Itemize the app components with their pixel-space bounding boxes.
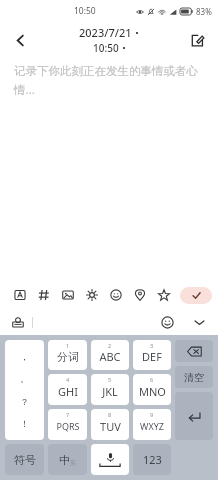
staticText: 2 <box>108 342 112 349</box>
button[interactable]: Emoji <box>156 311 178 333</box>
button[interactable]: Tag <box>32 283 56 307</box>
button[interactable]: 分词 <box>48 340 87 370</box>
button[interactable]: Weather <box>80 283 104 307</box>
staticText: 1 <box>66 342 70 349</box>
button[interactable]: WXYZ <box>133 409 171 440</box>
button[interactable]: Punctuation <box>5 340 44 440</box>
button[interactable]: Text style <box>8 283 32 307</box>
staticText: 123 <box>143 452 162 467</box>
button[interactable]: ABC <box>91 340 129 370</box>
button[interactable]: Done <box>180 287 212 304</box>
staticText: ！ <box>20 418 29 429</box>
staticText: DEF <box>142 349 162 364</box>
staticText: 中 <box>59 453 70 467</box>
staticText: 10:50 <box>93 41 119 55</box>
staticText: 4 <box>66 376 70 383</box>
staticText: 。 <box>20 373 29 384</box>
staticText: 83% <box>196 6 212 17</box>
staticText: 符号 <box>14 453 36 467</box>
staticText: 9 <box>150 411 154 418</box>
button[interactable]: GHI <box>48 374 87 405</box>
button[interactable]: Handwriting <box>8 312 28 332</box>
staticText: 6 <box>150 376 154 383</box>
staticText: 8 <box>108 411 112 418</box>
button[interactable]: Favorite <box>152 283 176 307</box>
staticText: 10:50 <box>74 5 96 17</box>
button[interactable]: TUV <box>91 409 129 440</box>
staticText: 2023/7/21 <box>79 25 132 40</box>
button[interactable]: MNO <box>133 374 171 405</box>
button[interactable]: Space / voice <box>91 444 129 475</box>
button[interactable]: Edit <box>184 27 210 53</box>
button[interactable]: DEF <box>133 340 171 370</box>
button[interactable]: 2023/7/21 <box>79 25 139 55</box>
staticText: 7 <box>66 411 70 418</box>
button[interactable]: PQRS <box>48 409 87 440</box>
staticText: 3 <box>150 342 154 349</box>
button[interactable]: Hide keyboard <box>188 311 210 333</box>
button[interactable]: Location <box>128 283 152 307</box>
staticText: WXYZ <box>140 420 164 432</box>
staticText: 5 <box>108 376 112 383</box>
button[interactable]: Image <box>56 283 80 307</box>
staticText: 清空 <box>184 371 204 384</box>
button[interactable]: Numbers <box>133 444 171 475</box>
staticText: ， <box>20 351 29 362</box>
staticText: TUV <box>100 419 121 434</box>
staticText: GHI <box>58 384 78 399</box>
button[interactable]: JKL <box>91 374 129 405</box>
staticText: ABC <box>99 349 121 364</box>
button[interactable]: Back <box>6 26 34 54</box>
staticText: 分词 <box>57 350 79 364</box>
staticText: PQRS <box>56 420 80 432</box>
staticText: MNO <box>139 384 166 399</box>
button[interactable]: Mood <box>104 283 128 307</box>
button[interactable]: Enter <box>175 392 213 440</box>
staticText: 记录下你此刻正在发生的事情或者心情... <box>14 64 204 98</box>
staticText: 英 <box>70 459 76 467</box>
button[interactable]: Language <box>48 444 87 475</box>
button[interactable]: Symbols <box>5 444 44 475</box>
button[interactable]: Clear <box>175 366 213 388</box>
button[interactable]: Backspace <box>175 340 213 362</box>
staticText: JKL <box>102 384 118 399</box>
staticText: ？ <box>20 396 29 407</box>
